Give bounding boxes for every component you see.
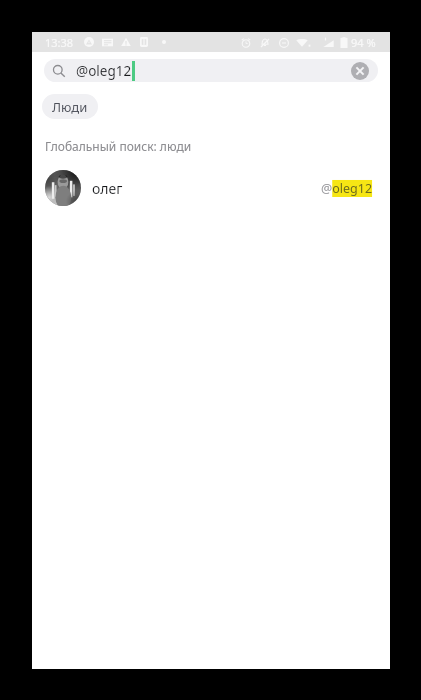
button[interactable]: Clear search [351, 62, 369, 80]
staticText: Люди [52, 98, 88, 116]
button[interactable]: олег [32, 166, 390, 210]
button[interactable]: Люди [42, 94, 98, 119]
staticText: @oleg12 [76, 62, 132, 80]
staticText: 13:38 [45, 35, 74, 50]
button[interactable]: @oleg12 [44, 59, 378, 82]
staticText: олег [92, 179, 123, 198]
staticText: 94 % [351, 35, 376, 50]
staticText: Глобальный поиск: люди [45, 138, 192, 154]
staticText: @oleg12 [321, 180, 373, 197]
